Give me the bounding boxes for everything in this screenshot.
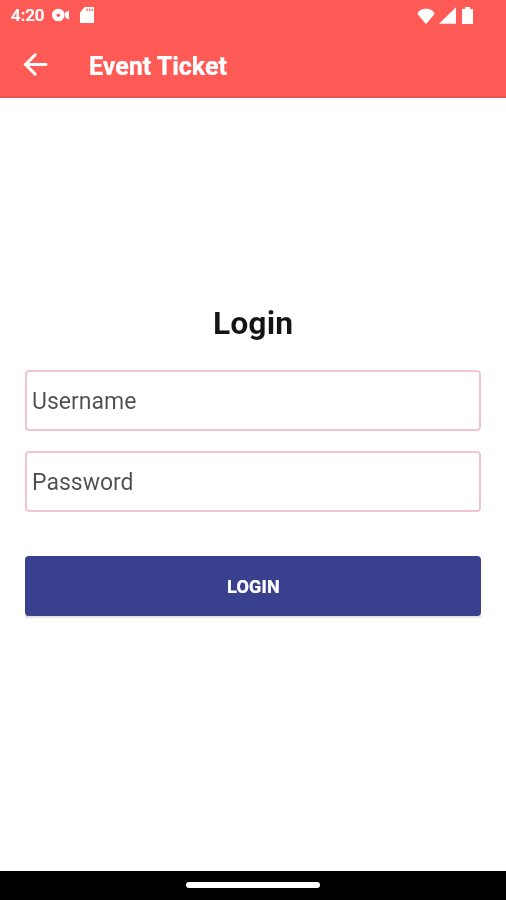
staticText: Username bbox=[32, 388, 137, 415]
button[interactable]: Username bbox=[25, 370, 481, 431]
staticText: 4:20 bbox=[11, 5, 45, 25]
staticText: Password bbox=[32, 469, 134, 496]
button[interactable]: Password bbox=[25, 451, 481, 512]
button[interactable]: LOGIN bbox=[25, 556, 481, 616]
staticText: Login bbox=[0, 304, 506, 342]
staticText: LOGIN bbox=[227, 576, 280, 597]
button[interactable]: Back bbox=[13, 44, 57, 88]
staticText: Event Ticket bbox=[89, 52, 227, 81]
